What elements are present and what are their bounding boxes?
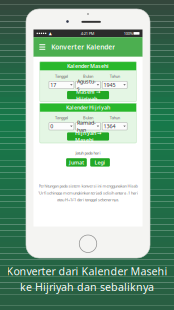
staticText: Konverter Kalender (51, 43, 115, 51)
button[interactable]: Masehi → Hijriyah (67, 91, 109, 99)
button[interactable]: Ramadhan (75, 123, 100, 130)
staticText: 1364 (104, 123, 116, 130)
staticText: Kalender Masehi (67, 62, 109, 70)
staticText: Legi (94, 159, 105, 166)
staticText: Bulan (83, 115, 93, 120)
staticText: ke Hijriyah dan sebaliknya (20, 280, 154, 294)
staticText: Ramadhan (77, 119, 96, 133)
staticText: Agustus (77, 78, 96, 92)
staticText: atau H+1/-1 dari tanggal sebenarnya. (57, 197, 119, 202)
staticText: Jumat (69, 159, 84, 166)
button[interactable]: Agustus (75, 81, 100, 89)
button[interactable]: 17 (49, 81, 74, 89)
button[interactable]: Konverter Kalender (33, 37, 142, 57)
staticText: Tahun (110, 74, 120, 79)
staticText: Hijriyah → Masehi (75, 129, 101, 144)
staticText: 1945 (104, 81, 116, 88)
staticText: Tanggal (55, 115, 68, 120)
staticText: Masehi → Hijriyah (76, 88, 100, 102)
button[interactable]: Jumat (66, 158, 87, 167)
staticText: ▲ (49, 31, 52, 36)
staticText: Tahun (110, 115, 120, 120)
staticText: Perhitungan pada sistem konversi ini men… (38, 183, 137, 189)
staticText: Konverter dari Kalender Masehi (6, 264, 167, 278)
staticText: 'Urfi sehingga memungkinkan terjadi seli… (38, 190, 138, 195)
staticText: Kalender Hijriyah (66, 104, 110, 111)
button[interactable]: Hijriyah → Masehi (67, 132, 109, 141)
staticText: Bulan (83, 74, 93, 79)
button[interactable]: 0 (49, 123, 74, 130)
staticText: Jatuh pada hari (75, 150, 100, 156)
button[interactable]: 1364 (102, 123, 127, 130)
staticText: 4:21 PM (81, 31, 95, 36)
staticText: 17 (50, 81, 56, 88)
staticText: 100% (124, 31, 133, 36)
button[interactable]: 1945 (102, 81, 127, 89)
staticText: 0 (50, 123, 53, 130)
staticText: Tanggal (55, 74, 68, 79)
button[interactable]: Legi (90, 158, 110, 167)
